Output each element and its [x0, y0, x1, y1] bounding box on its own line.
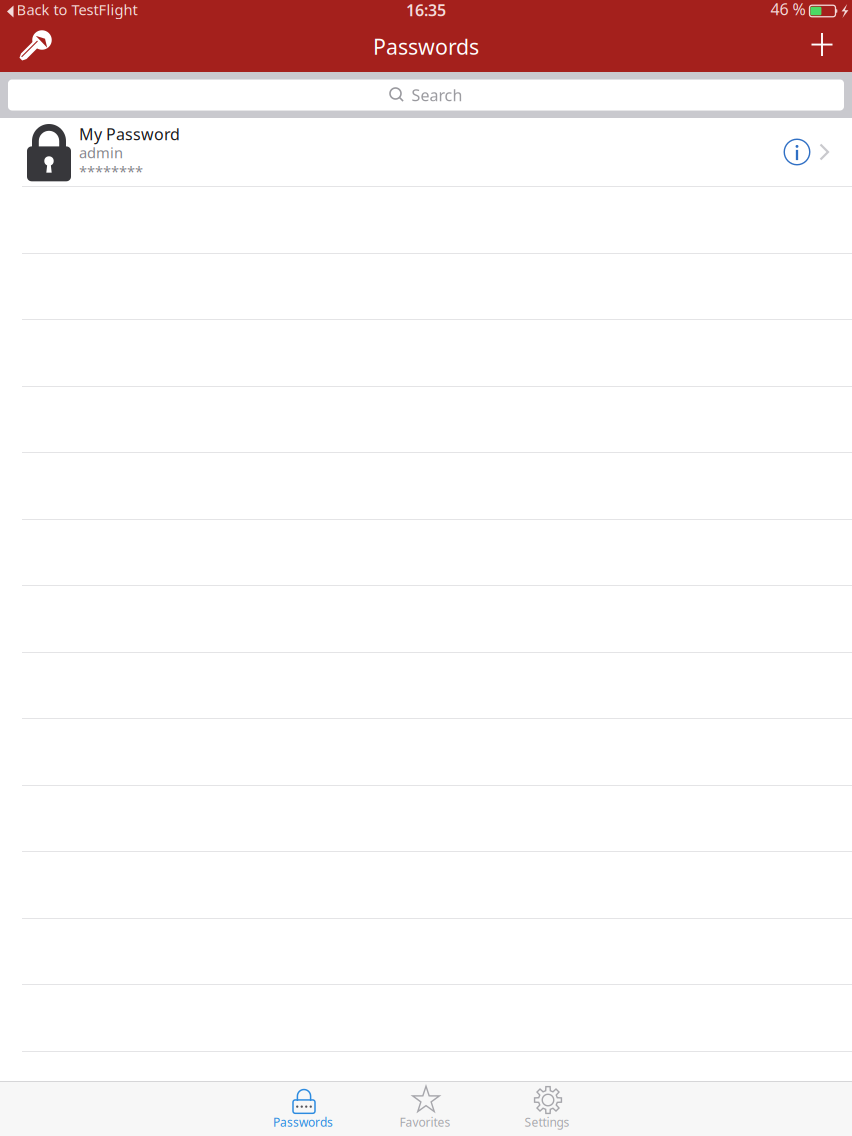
staticText: Search	[411, 84, 462, 106]
button[interactable]: Add password	[798, 20, 846, 68]
button[interactable]: Favorites	[364, 1082, 486, 1136]
button[interactable]: Settings	[486, 1082, 608, 1136]
staticText: Passwords	[273, 1114, 333, 1130]
staticText: Back to TestFlight	[16, 0, 137, 19]
staticText: Settings	[524, 1114, 569, 1130]
staticText: 46 %	[770, 0, 805, 20]
staticText: Passwords	[373, 32, 479, 61]
button[interactable]: Details	[777, 132, 817, 172]
staticText: Favorites	[399, 1114, 450, 1130]
button[interactable]: Passwords	[242, 1082, 364, 1136]
button[interactable]: Key	[6, 20, 54, 68]
button[interactable]: My Password	[0, 118, 852, 186]
staticText: admin	[79, 143, 123, 162]
staticText: My Password	[79, 123, 180, 145]
staticText: 16:35	[406, 0, 446, 21]
staticText: ********	[79, 161, 143, 181]
